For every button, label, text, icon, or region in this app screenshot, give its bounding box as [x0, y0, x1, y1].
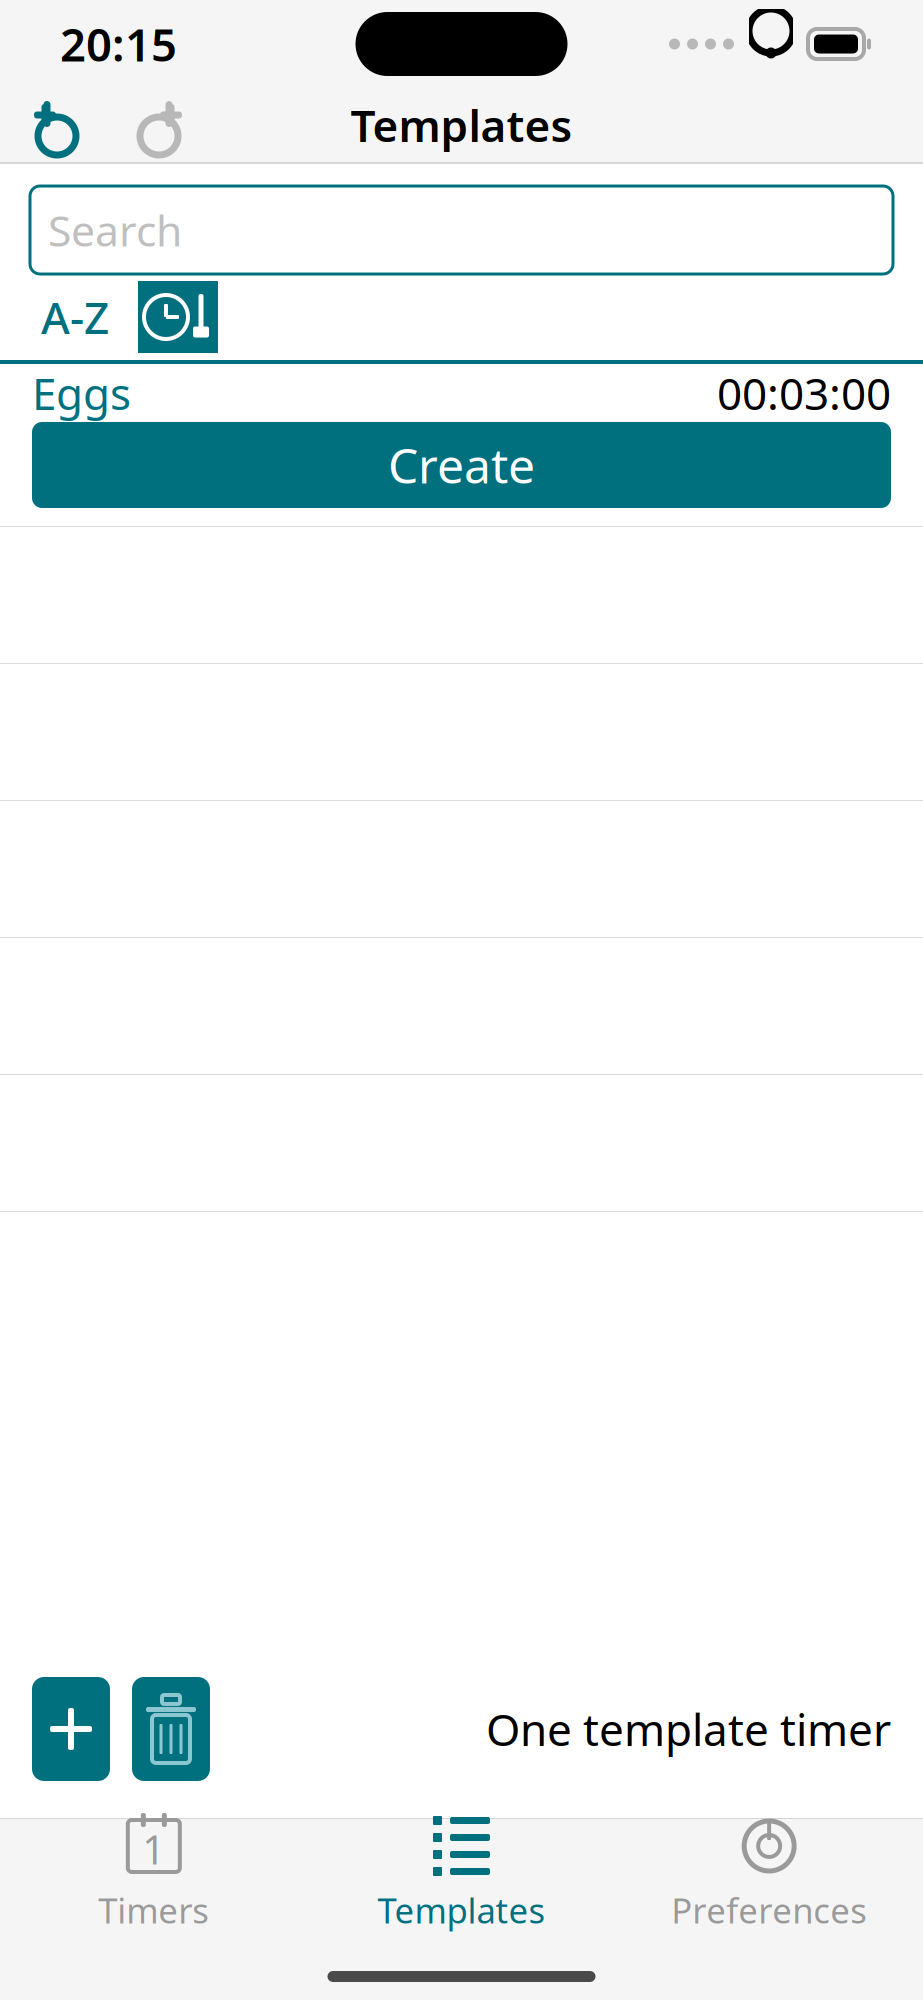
button[interactable]: Sort by duration — [138, 281, 218, 353]
staticText: Preferences — [671, 1887, 867, 1933]
staticText: 00:03:00 — [717, 364, 891, 422]
staticText: Eggs — [32, 364, 131, 422]
staticText: 1 — [142, 1822, 165, 1875]
button[interactable]: Add template — [32, 1677, 110, 1781]
staticText: Templates — [350, 96, 572, 154]
button[interactable]: A-Z — [34, 285, 116, 349]
staticText: 20:15 — [60, 14, 177, 74]
button[interactable]: Eggs — [0, 364, 923, 526]
staticText: Timers — [98, 1887, 209, 1933]
staticText: A-Z — [41, 288, 109, 346]
button[interactable]: Undo — [12, 88, 108, 162]
button[interactable]: Create — [32, 422, 891, 508]
button[interactable]: Delete template — [132, 1677, 210, 1781]
staticText: Search — [48, 202, 182, 258]
staticText: Templates — [377, 1887, 545, 1933]
button[interactable]: Search — [30, 186, 893, 274]
button[interactable]: Preferences — [615, 1819, 923, 1929]
button[interactable]: 1 — [0, 1819, 308, 1929]
button[interactable]: Templates — [308, 1819, 615, 1929]
staticText: Create — [388, 433, 535, 497]
staticText: One template timer — [486, 1700, 891, 1758]
button[interactable]: Redo — [108, 88, 204, 162]
